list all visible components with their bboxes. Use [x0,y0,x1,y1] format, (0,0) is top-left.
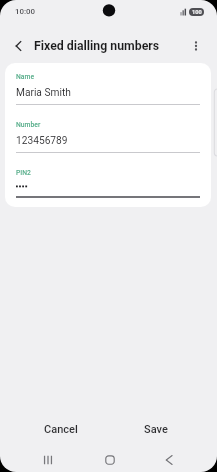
staticText: Maria Smith [16,87,71,99]
button[interactable]: Save [126,411,186,447]
button[interactable]: Home [92,447,128,472]
staticText: Fixed dialling numbers [34,39,160,53]
staticText: PIN2 [16,169,31,177]
staticText: Number [16,121,41,129]
staticText: 100 [192,9,202,16]
button[interactable]: Back [152,447,188,472]
staticText: 10:00 [15,7,36,16]
staticText: Cancel [44,423,78,436]
button[interactable]: Recent apps [30,447,66,472]
button[interactable]: Navigate up [6,33,32,59]
staticText: 123456789 [16,135,68,147]
button[interactable]: Cancel [31,411,91,447]
staticText: Save [144,423,168,436]
button[interactable]: More options [183,33,209,59]
staticText: Name [16,73,35,81]
